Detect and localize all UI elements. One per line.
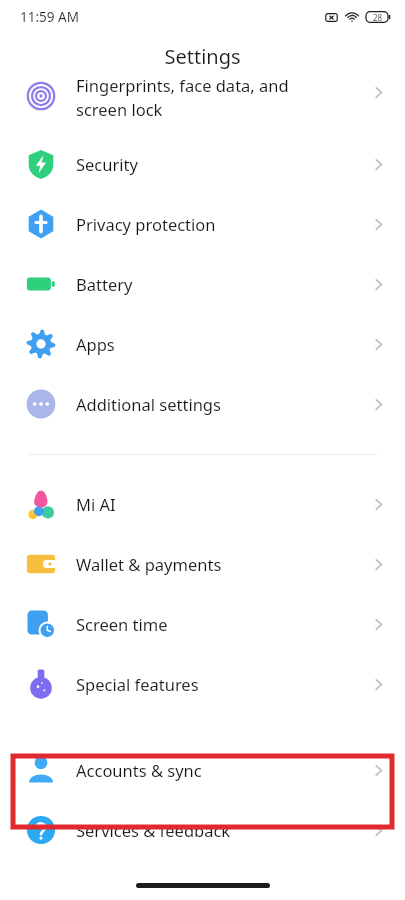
button[interactable]: Accounts & sync — [0, 740, 405, 800]
button[interactable]: Special features — [0, 654, 405, 714]
staticText: Accounts & sync — [76, 759, 202, 781]
button[interactable]: Wallet & payments — [0, 534, 405, 594]
button[interactable]: Mi AI — [0, 474, 405, 534]
other: Wi-Fi — [345, 10, 359, 24]
staticText: Fingerprints, face data, and — [76, 78, 289, 96]
staticText: Wallet & payments — [76, 553, 222, 575]
staticText: Privacy protection — [76, 213, 216, 235]
button[interactable]: Additional settings — [0, 374, 405, 434]
staticText: Battery — [76, 273, 133, 295]
staticText: Screen time — [76, 613, 168, 635]
staticText: Security — [76, 153, 138, 175]
staticText: Mi AI — [76, 493, 116, 515]
staticText: Services & feedback — [76, 819, 231, 841]
staticText: Special features — [76, 673, 199, 695]
staticText: screen lock — [76, 98, 163, 120]
staticText: 28 — [373, 12, 383, 23]
button[interactable]: Security — [0, 134, 405, 194]
button[interactable]: Services & feedback — [0, 800, 405, 860]
staticText: Apps — [76, 333, 115, 355]
staticText: 11:59 AM — [20, 8, 79, 26]
button[interactable]: Screen time — [0, 594, 405, 654]
other: Silent mode — [325, 11, 338, 24]
button[interactable]: Fingerprints, face data, and — [0, 78, 405, 134]
button[interactable]: Privacy protection — [0, 194, 405, 254]
button[interactable]: Apps — [0, 314, 405, 374]
staticText: Settings — [164, 43, 241, 70]
button[interactable]: Battery — [0, 254, 405, 314]
staticText: Additional settings — [76, 393, 221, 415]
